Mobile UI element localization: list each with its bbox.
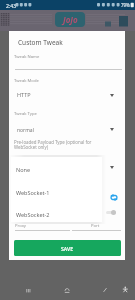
other: Expand <box>110 94 114 97</box>
staticText: 2:43 <box>6 2 17 9</box>
other: Expand <box>110 128 114 131</box>
button[interactable]: None <box>11 158 102 180</box>
staticText: JoJo <box>63 14 78 25</box>
staticText: Custom Tweak <box>18 38 63 47</box>
staticText: WebSocket-1 <box>16 189 50 196</box>
staticText: 79% <box>121 2 130 8</box>
button[interactable]: Back <box>99 283 114 298</box>
staticText: None <box>16 166 31 173</box>
staticText: Pre-loaded Payload Type (optional for We… <box>14 139 92 150</box>
button[interactable]: Toggle <box>106 209 116 215</box>
button[interactable]: Home <box>60 284 75 299</box>
staticText: Tweak Name <box>14 54 40 60</box>
other: Expand <box>110 166 114 169</box>
staticText: Proxy <box>15 223 26 229</box>
staticText: Port <box>91 223 100 229</box>
button[interactable]: WebSocket-2 <box>11 203 102 225</box>
button[interactable]: SAVE <box>14 240 121 256</box>
other: Swap <box>110 194 118 201</box>
staticText: SAVE <box>61 245 74 252</box>
button[interactable]: WebSocket-1 <box>11 181 102 203</box>
button[interactable]: Recents <box>21 284 36 299</box>
button[interactable]: Accessibility <box>120 282 135 297</box>
staticText: Tweak Type <box>14 111 37 117</box>
staticText: WebSocket-2 <box>16 211 50 218</box>
staticText: Tweak Mode <box>14 78 39 84</box>
button[interactable]: normal <box>17 127 34 134</box>
button[interactable]: HTTP <box>17 91 31 98</box>
